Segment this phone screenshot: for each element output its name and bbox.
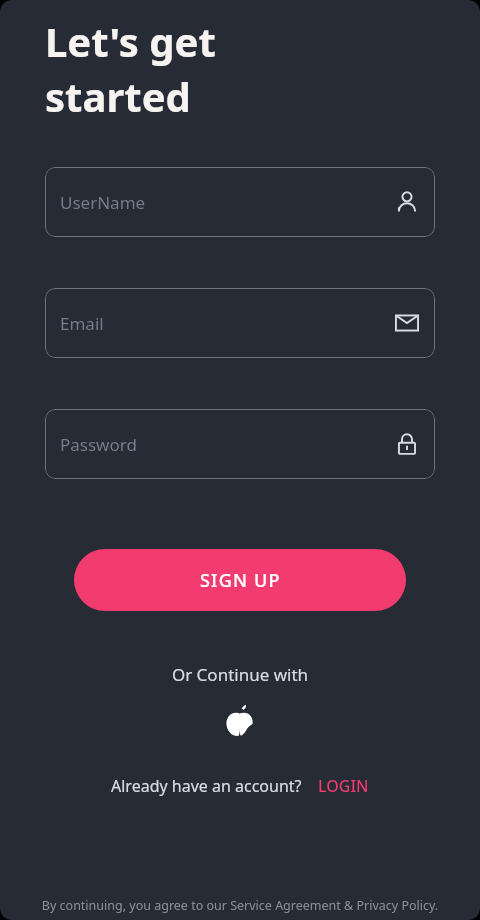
button[interactable]: Email — [45, 288, 435, 358]
staticText: By continuing, you agree to our Service … — [0, 897, 480, 914]
button[interactable]: LOGIN — [318, 775, 369, 797]
staticText: UserName — [60, 191, 146, 214]
staticText: Or Continue with — [0, 663, 480, 686]
staticText: Already have an account? — [111, 775, 302, 797]
other: Email — [394, 310, 420, 336]
staticText: Email — [60, 312, 104, 335]
staticText: SIGN UP — [200, 568, 281, 593]
button[interactable]: UserName — [45, 167, 435, 237]
staticText: Password — [60, 433, 137, 456]
button[interactable]: SIGN UP — [74, 549, 406, 611]
other: User name — [394, 189, 420, 215]
button[interactable]: Password — [45, 409, 435, 479]
staticText: LOGIN — [318, 775, 369, 797]
staticText: Let's get started — [45, 14, 216, 124]
other: Password — [394, 431, 420, 457]
button[interactable]: Continue with Apple — [219, 700, 261, 742]
